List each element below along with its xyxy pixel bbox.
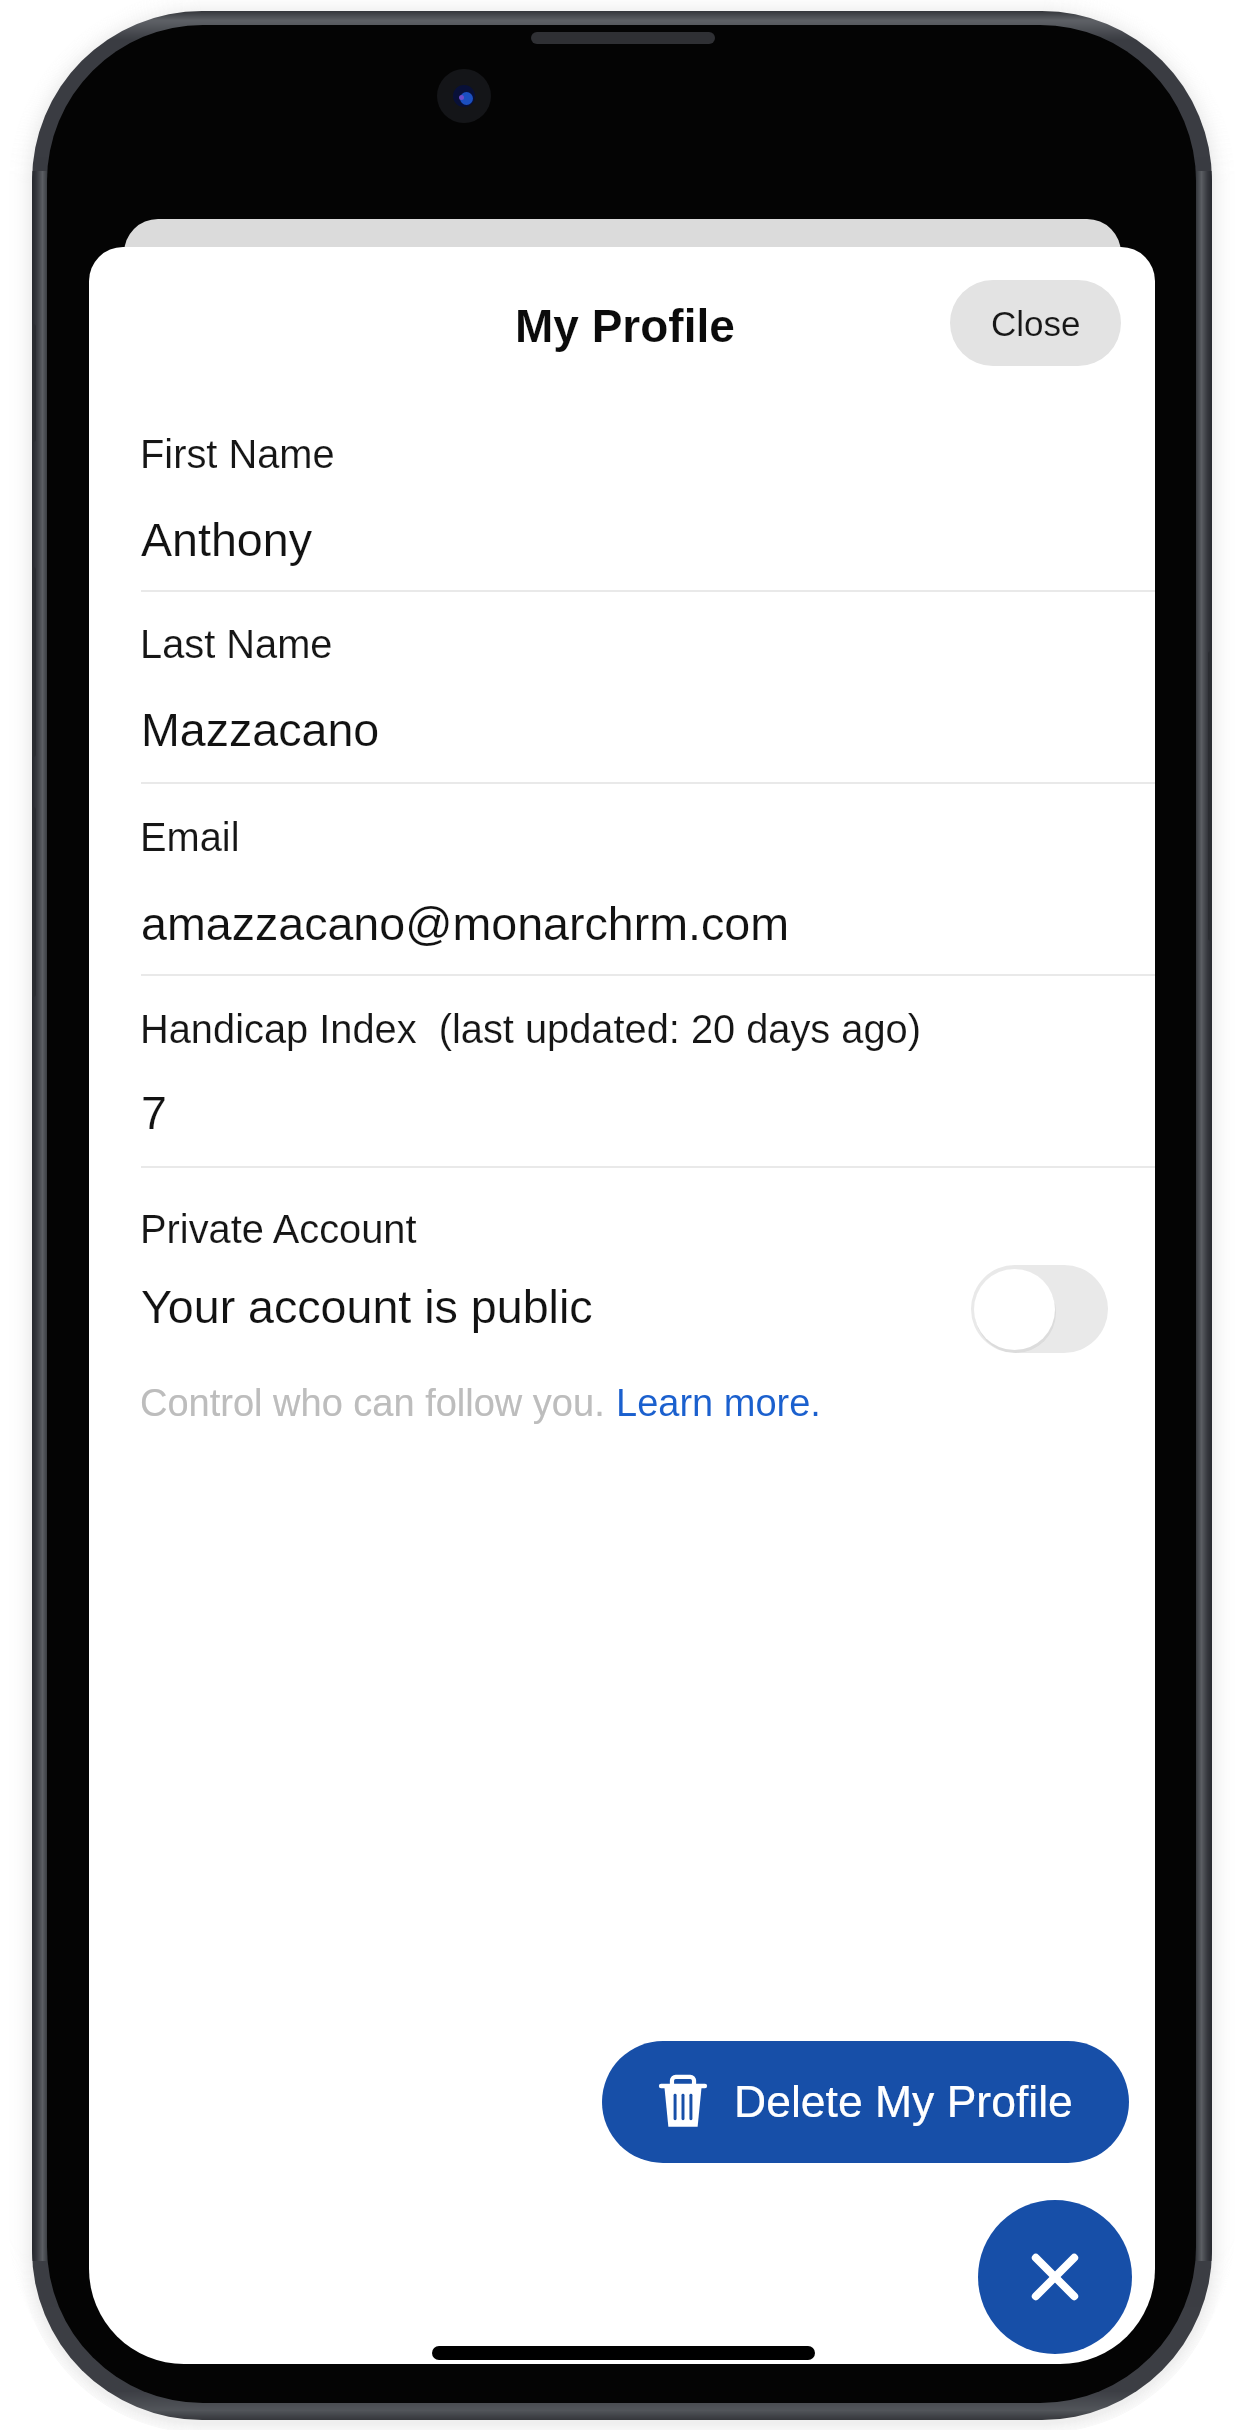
button[interactable]: Private account toggle	[971, 1265, 1108, 1353]
staticText: First Name	[140, 432, 335, 476]
staticText: Private Account	[140, 1207, 417, 1251]
staticText: My Profile	[515, 300, 735, 351]
staticText: Mazzacano	[141, 704, 380, 756]
staticText: Your account is public	[141, 1281, 593, 1333]
staticText: amazzacano@monarchrm.com	[141, 898, 790, 950]
staticText: Handicap Index (last updated: 20 days ag…	[140, 1007, 921, 1051]
staticText: Email	[140, 815, 240, 859]
staticText: Delete My Profile	[734, 2077, 1073, 2127]
button[interactable]: Close	[978, 2200, 1132, 2354]
staticText: Anthony	[141, 514, 312, 566]
button[interactable]: Close	[950, 280, 1121, 366]
button[interactable]: Delete My Profile	[602, 2041, 1129, 2163]
staticText: Last Name	[140, 622, 333, 666]
staticText: Close	[991, 304, 1081, 343]
button[interactable]: Learn more.	[616, 1382, 821, 1424]
staticText: 7	[141, 1087, 167, 1139]
staticText: Control who can follow you.	[140, 1382, 616, 1424]
